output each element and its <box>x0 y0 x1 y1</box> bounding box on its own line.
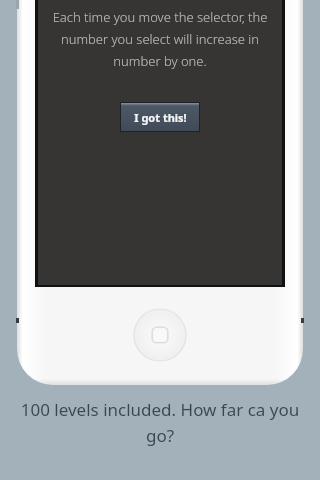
staticText: I got this! <box>134 110 187 125</box>
button[interactable]: Home <box>134 309 186 361</box>
staticText: Each time you move the selector, the num… <box>44 8 276 70</box>
button[interactable]: I got this! <box>121 103 199 131</box>
staticText: 100 levels included. How far ca you go? <box>18 398 302 447</box>
